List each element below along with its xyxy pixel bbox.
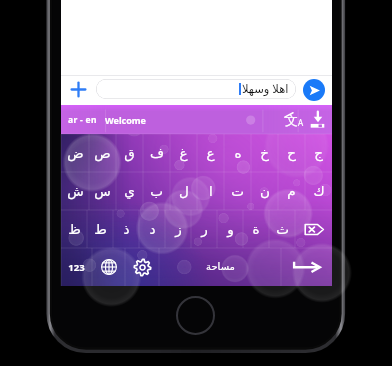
button[interactable]: م (278, 172, 305, 210)
staticText: د (149, 221, 156, 237)
staticText: ك (313, 183, 325, 199)
staticText: ق (124, 145, 135, 161)
button[interactable]: Add attachment (67, 78, 89, 100)
button[interactable]: Send (303, 79, 325, 101)
staticText: ن (260, 183, 270, 199)
staticText: 123 (68, 261, 85, 274)
button[interactable]: ز (165, 210, 191, 248)
staticText: ظ (68, 221, 81, 237)
button[interactable]: ت (224, 172, 251, 210)
staticText: و (227, 221, 234, 237)
button[interactable]: Download theme (305, 105, 330, 134)
staticText: ت (231, 183, 244, 199)
staticText: ث (276, 221, 289, 237)
staticText: اهلا وسهلا (242, 81, 289, 97)
button[interactable]: مساحة (159, 248, 281, 286)
staticText: ة (252, 221, 260, 237)
staticText: ز (175, 221, 182, 237)
button[interactable]: ا (197, 172, 224, 210)
button[interactable]: Settings (125, 248, 159, 286)
staticText: ض (67, 145, 84, 161)
button[interactable]: و (217, 210, 243, 248)
button[interactable]: ل (170, 172, 197, 210)
staticText: ذ (123, 221, 130, 237)
staticText: ب (150, 183, 163, 199)
staticText: ج (314, 145, 323, 161)
button[interactable]: ص (89, 134, 116, 172)
button[interactable]: ر (191, 210, 217, 248)
button[interactable]: Welcome (105, 114, 146, 126)
staticText: م (287, 183, 296, 199)
staticText: 文 (285, 112, 298, 128)
button[interactable]: ف (143, 134, 170, 172)
button[interactable]: ب (143, 172, 170, 210)
button[interactable]: ذ (113, 210, 139, 248)
button[interactable]: ظ (61, 210, 87, 248)
button[interactable]: ش (61, 172, 89, 210)
staticText: ل (179, 183, 189, 199)
staticText: خ (260, 145, 269, 161)
staticText: ح (287, 145, 296, 161)
button[interactable]: ث (269, 210, 295, 248)
button[interactable]: Enter (281, 248, 332, 286)
button[interactable]: ع (197, 134, 224, 172)
button[interactable]: ي (116, 172, 143, 210)
button[interactable]: Translate (284, 105, 305, 134)
button[interactable]: 123 (61, 248, 92, 286)
button[interactable]: ج (305, 134, 332, 172)
button[interactable]: Backspace (295, 210, 332, 248)
staticText: ش (67, 183, 84, 199)
button[interactable]: ط (87, 210, 113, 248)
staticText: ف (150, 145, 164, 161)
button[interactable]: خ (251, 134, 278, 172)
staticText: ص (94, 145, 111, 161)
staticText: ي (124, 183, 135, 199)
button[interactable]: س (89, 172, 116, 210)
button[interactable]: ن (251, 172, 278, 210)
button[interactable]: ك (305, 172, 332, 210)
button[interactable]: ar - en (68, 114, 97, 126)
staticText: A (298, 117, 304, 128)
button[interactable]: Change language (92, 248, 125, 286)
staticText: غ (179, 145, 188, 161)
staticText: ر (201, 221, 208, 237)
button[interactable]: ق (116, 134, 143, 172)
staticText: ه (234, 145, 242, 161)
staticText: ع (206, 145, 215, 161)
button[interactable]: ض (61, 134, 89, 172)
button[interactable]: ه (224, 134, 251, 172)
button[interactable]: ح (278, 134, 305, 172)
staticText: مساحة (206, 261, 235, 273)
staticText: ar - en (68, 114, 97, 126)
staticText: ا (209, 183, 213, 199)
staticText: ط (94, 221, 107, 237)
button[interactable]: غ (170, 134, 197, 172)
staticText: Welcome (105, 114, 146, 126)
button[interactable]: د (139, 210, 165, 248)
button[interactable]: ة (243, 210, 269, 248)
button[interactable]: اهلا وسهلا (96, 79, 296, 99)
staticText: س (94, 183, 111, 199)
